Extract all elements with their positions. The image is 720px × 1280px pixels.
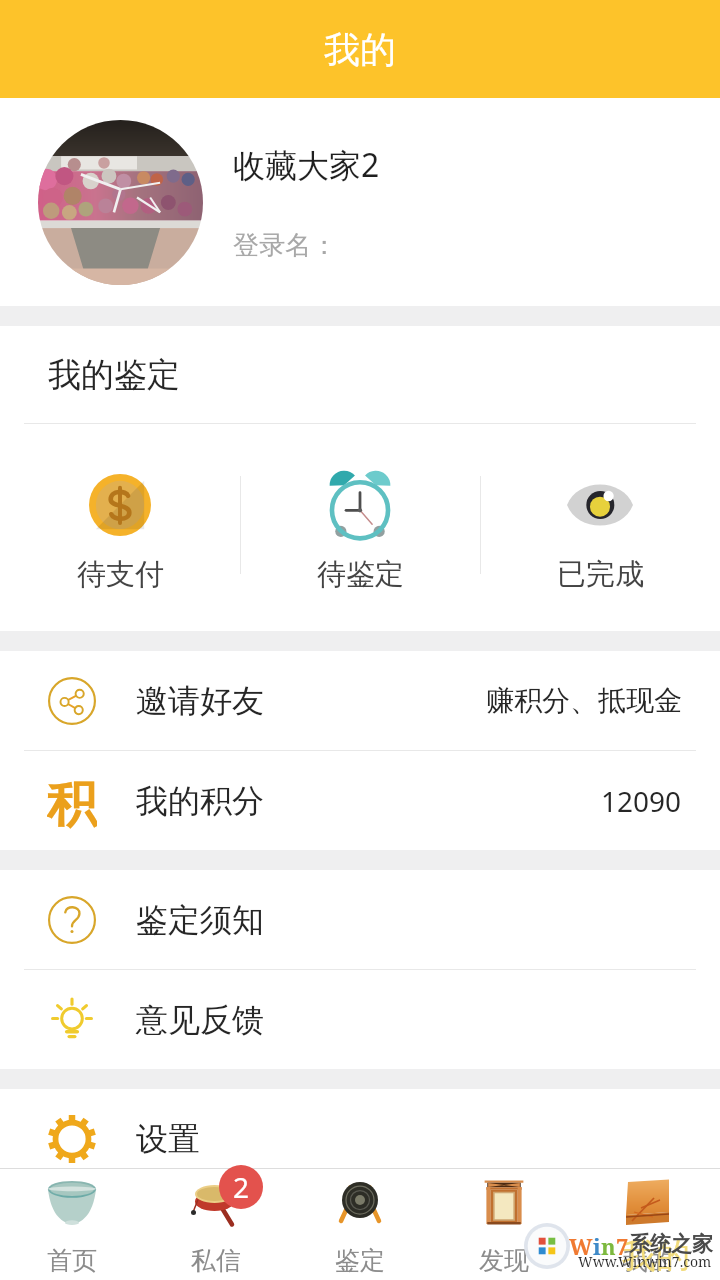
other: 鉴定 (335, 1177, 385, 1227)
staticText: 我的鉴定 (48, 354, 180, 396)
button[interactable]: 意见反馈 (0, 970, 720, 1069)
staticText: W (569, 1231, 593, 1261)
staticText: Www.Winwin7.com (578, 1252, 712, 1271)
staticText: 12090 (601, 782, 682, 820)
staticText: i (593, 1231, 601, 1261)
button[interactable]: 待鉴定 (240, 424, 480, 593)
other: 邀请好友 (48, 677, 96, 725)
staticText: 我的 (324, 27, 396, 72)
staticText: 鉴定 (335, 1245, 385, 1276)
staticText: 发现 (479, 1245, 529, 1276)
staticText: 已完成 (557, 556, 644, 593)
staticText: 赚积分、抵现金 (486, 683, 682, 718)
other: 发现 (482, 1177, 526, 1227)
staticText: 登录名： (233, 229, 337, 262)
staticText: n (601, 1231, 616, 1261)
staticText: 我的 (622, 1234, 690, 1277)
button[interactable]: 积 (0, 751, 720, 850)
staticText: 收藏大家2 (233, 143, 380, 187)
other: 我的 (623, 1177, 673, 1227)
other: 设置 (47, 1114, 97, 1164)
staticText: 私信 (191, 1245, 241, 1276)
staticText: 2 (233, 1168, 250, 1206)
staticText: 7 (616, 1231, 629, 1261)
other: 意见反馈 (48, 996, 96, 1044)
staticText: 我的 (623, 1245, 673, 1276)
button[interactable]: 邀请好友 (0, 651, 720, 750)
staticText: 我的积分 (136, 781, 264, 821)
other: 鉴定须知 (48, 896, 96, 944)
button[interactable]: 鉴定须知 (0, 870, 720, 969)
staticText: 系统之家 (629, 1231, 713, 1257)
button[interactable]: 鉴定 (288, 1169, 432, 1276)
staticText: 意见反馈 (136, 1000, 264, 1040)
staticText: 待支付 (77, 556, 164, 593)
button[interactable]: 我的鉴定 (0, 326, 720, 423)
staticText: 待鉴定 (317, 556, 404, 593)
button[interactable]: 待支付 (0, 424, 240, 593)
other: 首页 (47, 1179, 97, 1226)
button[interactable]: 私信 (144, 1169, 288, 1276)
button[interactable]: 已完成 (480, 424, 720, 593)
other: 私信 (191, 1177, 241, 1227)
button[interactable]: 首页 (0, 1169, 144, 1276)
staticText: 积 (47, 773, 97, 829)
staticText: 设置 (136, 1119, 200, 1159)
button[interactable]: 我的 (576, 1169, 720, 1276)
button[interactable]: 设置 (0, 1089, 720, 1188)
staticText: 首页 (47, 1245, 97, 1276)
button[interactable]: 发现 (432, 1169, 576, 1276)
button[interactable]: 收藏大家2 (0, 98, 720, 306)
staticText: 邀请好友 (136, 681, 264, 721)
staticText: 鉴定须知 (136, 900, 264, 940)
